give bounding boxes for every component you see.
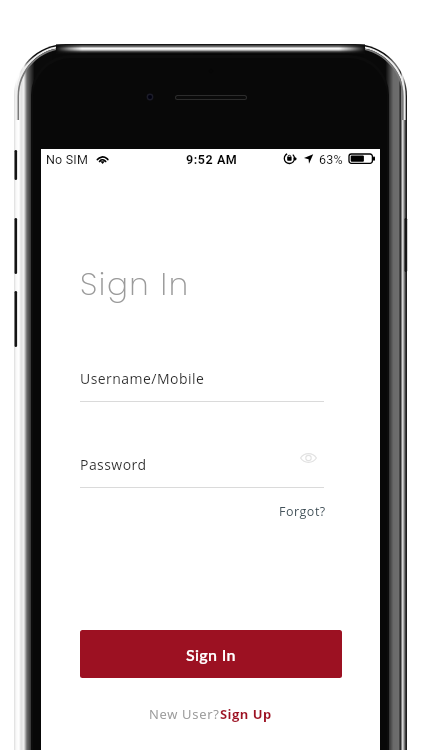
staticText: Username/Mobile (80, 369, 205, 388)
staticText: No SIM (46, 152, 89, 167)
button[interactable]: Forgot? (275, 500, 330, 523)
staticText: 63% (319, 152, 343, 167)
button[interactable]: Sign In (80, 630, 342, 678)
button[interactable]: Show password (299, 449, 317, 466)
staticText: 9:52 AM (186, 152, 238, 167)
staticText: Forgot? (279, 503, 326, 520)
button[interactable]: Sign Up (220, 705, 272, 723)
staticText: New User? (149, 705, 220, 723)
staticText: Sign In (80, 262, 190, 305)
staticText: Password (80, 455, 147, 474)
staticText: Sign In (186, 645, 236, 664)
